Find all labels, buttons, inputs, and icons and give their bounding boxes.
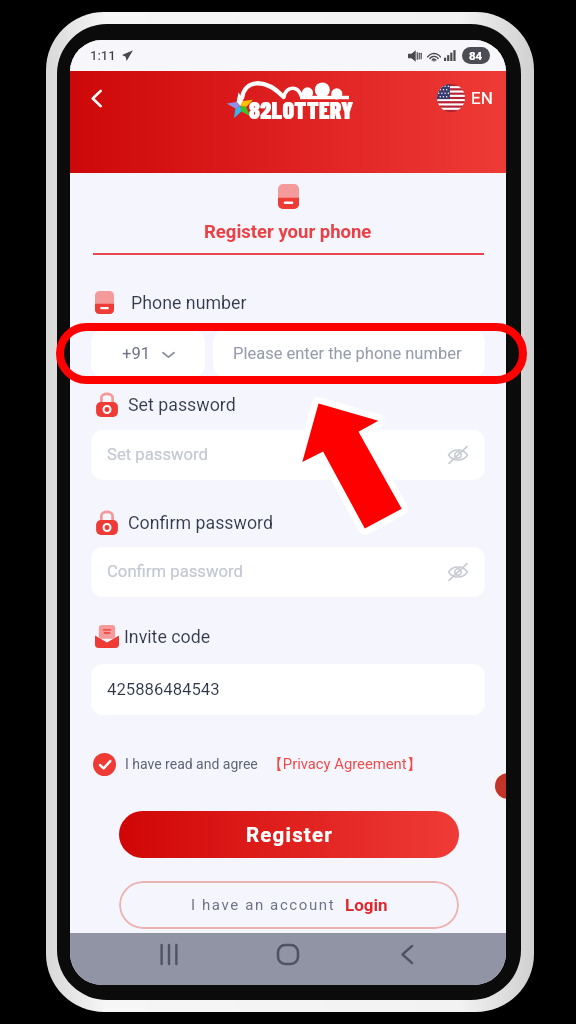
staticText: +91 xyxy=(122,344,151,364)
button[interactable]: Set password xyxy=(91,430,485,480)
button[interactable]: Show password xyxy=(445,442,471,468)
button[interactable]: 【Privacy Agreement】 xyxy=(268,755,422,774)
button[interactable]: Agree to terms xyxy=(93,753,116,776)
staticText: Register xyxy=(246,823,333,847)
staticText: Set password xyxy=(107,445,208,465)
staticText: Phone number xyxy=(131,292,247,313)
staticText: Confirm password xyxy=(128,512,273,533)
staticText: 425886484543 xyxy=(107,680,220,700)
button[interactable]: Confirm password xyxy=(91,547,485,597)
staticText: Confirm password xyxy=(107,562,243,582)
button[interactable]: Register xyxy=(119,811,459,858)
button[interactable]: Back xyxy=(386,933,428,975)
staticText: Register your phone xyxy=(204,221,372,243)
button[interactable]: Support xyxy=(491,769,506,803)
button[interactable]: Show password xyxy=(445,559,471,585)
staticText: Set password xyxy=(128,394,236,415)
staticText: Login xyxy=(345,895,388,915)
button[interactable]: Recent apps xyxy=(148,933,190,975)
staticText: Invite code xyxy=(124,626,211,647)
staticText: 1:11 xyxy=(90,48,116,63)
staticText: I have an account xyxy=(191,896,336,914)
button[interactable]: I have an account xyxy=(119,881,459,929)
staticText: Please enter the phone number xyxy=(233,344,462,363)
button[interactable]: Back xyxy=(74,76,118,120)
button[interactable]: Please enter the phone number xyxy=(213,330,485,377)
staticText: I have read and agree xyxy=(125,756,258,772)
button[interactable]: EN xyxy=(437,84,493,112)
staticText: 82LOTTERY xyxy=(249,95,354,124)
staticText: 84 xyxy=(469,49,483,62)
button[interactable]: +91 xyxy=(91,330,205,377)
button[interactable]: 425886484543 xyxy=(91,664,485,715)
staticText: EN xyxy=(471,88,493,108)
button[interactable]: Home xyxy=(267,933,309,975)
